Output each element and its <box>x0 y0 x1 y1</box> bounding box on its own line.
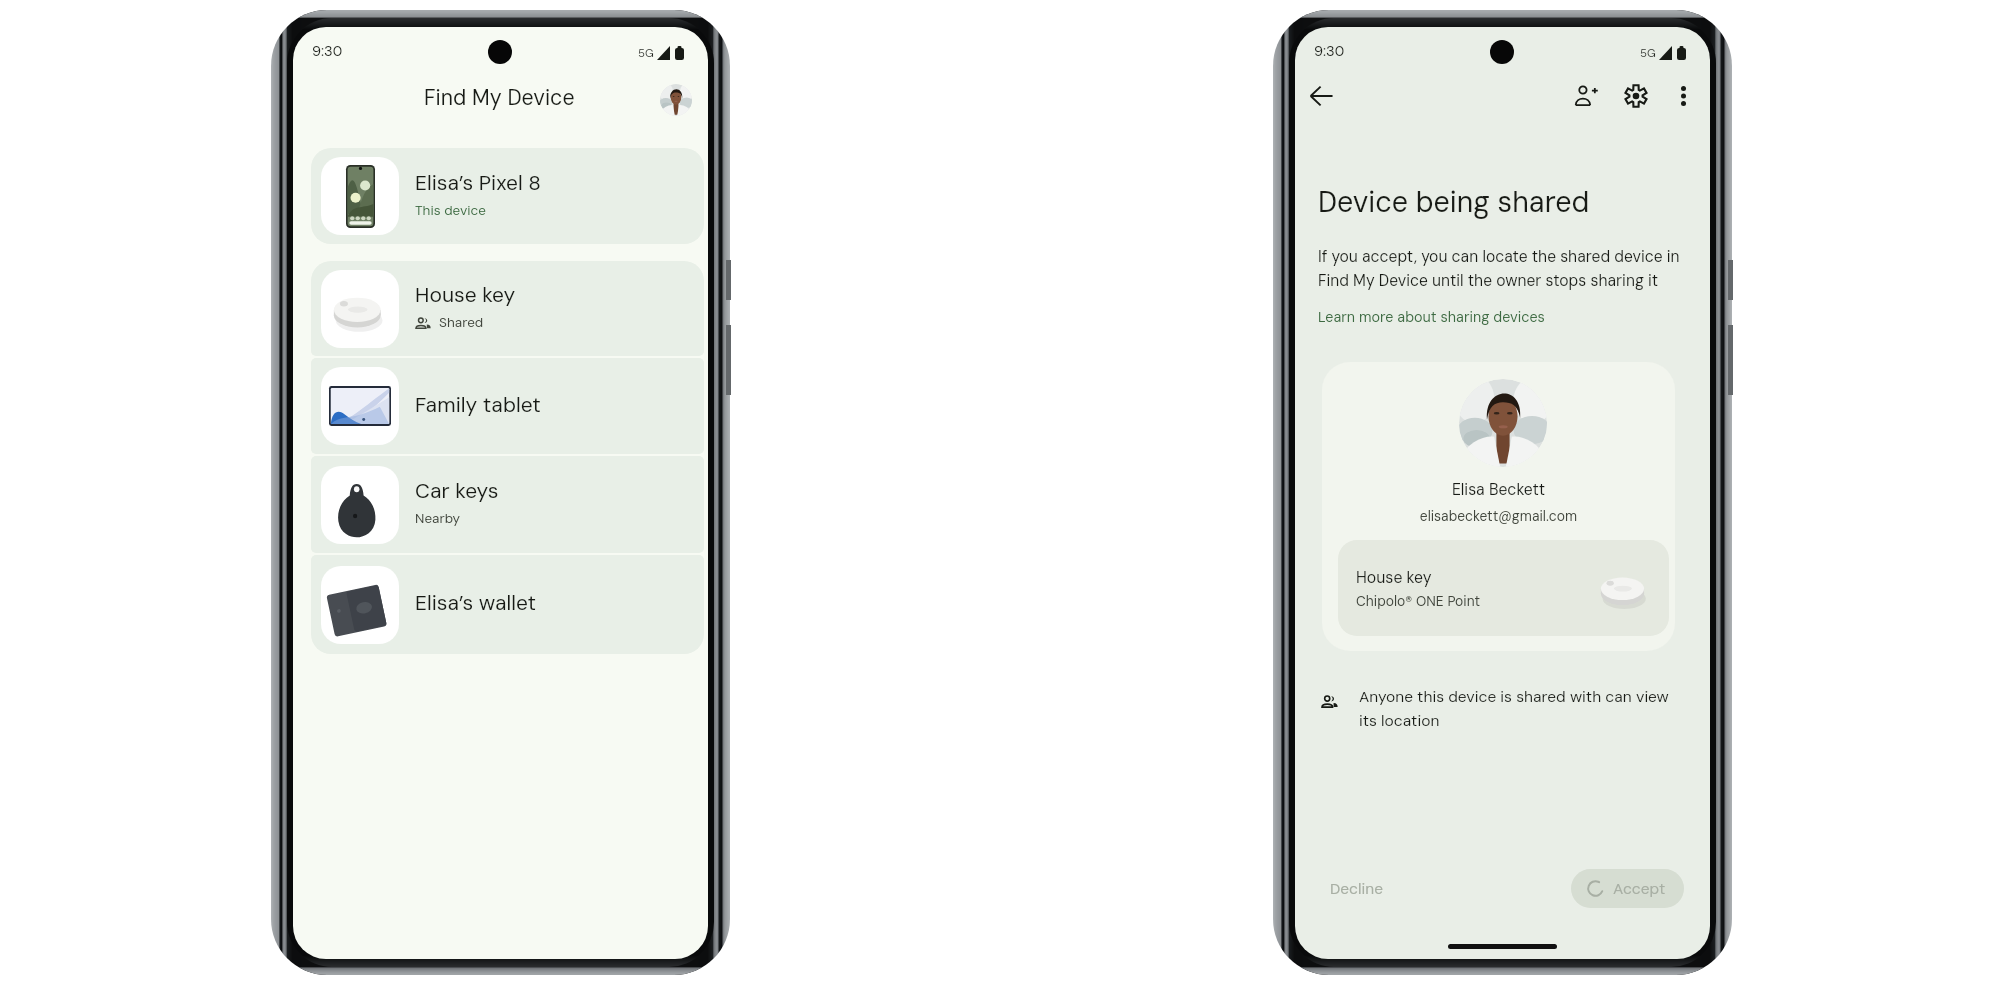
button[interactable]: Decline <box>1318 869 1395 908</box>
staticText: Elisa’s Pixel 8 <box>415 169 542 196</box>
staticText: This device <box>415 202 487 220</box>
staticText: Elisa’s wallet <box>415 589 537 616</box>
staticText: Anyone this device is shared with can vi… <box>1359 687 1679 731</box>
staticText: 9:30 <box>1314 42 1345 61</box>
button[interactable]: Elisa’s Pixel 8 <box>311 148 704 244</box>
staticText: House key <box>1356 567 1432 588</box>
button[interactable]: Learn more about sharing devices <box>1318 308 1545 327</box>
staticText: 5G <box>638 46 654 61</box>
button[interactable]: House key <box>1338 540 1669 636</box>
button[interactable]: Account <box>660 84 692 116</box>
staticText: House key <box>415 281 516 308</box>
staticText: If you accept, you can locate the shared… <box>1318 247 1686 291</box>
staticText: elisabeckett@gmail.com <box>1322 507 1675 525</box>
staticText: Decline <box>1330 879 1383 899</box>
staticText: Shared <box>439 314 484 332</box>
button[interactable]: Family tablet <box>311 358 704 454</box>
button[interactable]: Back <box>1304 78 1339 113</box>
staticText: Find My Device <box>424 84 575 112</box>
staticText: Car keys <box>415 477 499 504</box>
button[interactable]: Accept <box>1571 869 1684 908</box>
staticText: 9:30 <box>312 42 343 61</box>
button[interactable]: Elisa’s wallet <box>311 555 704 654</box>
staticText: 5G <box>1640 46 1656 61</box>
button[interactable]: Car keys <box>311 456 704 553</box>
button[interactable]: Add person <box>1569 78 1604 113</box>
staticText: Elisa Beckett <box>1322 479 1675 499</box>
button[interactable]: Settings <box>1618 78 1653 113</box>
staticText: Accept <box>1613 879 1666 899</box>
button[interactable]: House key <box>311 261 704 356</box>
staticText: Learn more about sharing devices <box>1318 308 1545 327</box>
button[interactable]: More options <box>1666 78 1701 113</box>
staticText: Nearby <box>415 510 461 528</box>
staticText: Chipolo® ONE Point <box>1356 592 1481 610</box>
staticText: Device being shared <box>1318 184 1590 221</box>
staticText: Family tablet <box>415 391 541 418</box>
